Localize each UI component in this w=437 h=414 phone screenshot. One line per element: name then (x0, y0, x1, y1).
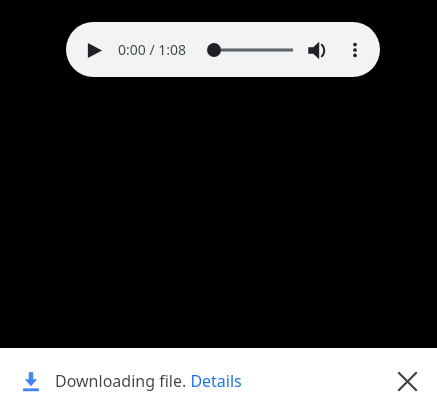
other: Download (20, 370, 42, 392)
button[interactable]: Volume slider (207, 35, 293, 65)
staticText: 0:00 / 1:08 (118, 40, 187, 59)
button[interactable]: Close (385, 359, 429, 403)
button[interactable]: Mute (298, 31, 336, 69)
staticText: Downloading file. Details (55, 370, 242, 392)
button[interactable]: More options (336, 31, 374, 69)
button[interactable]: Play (76, 32, 112, 68)
